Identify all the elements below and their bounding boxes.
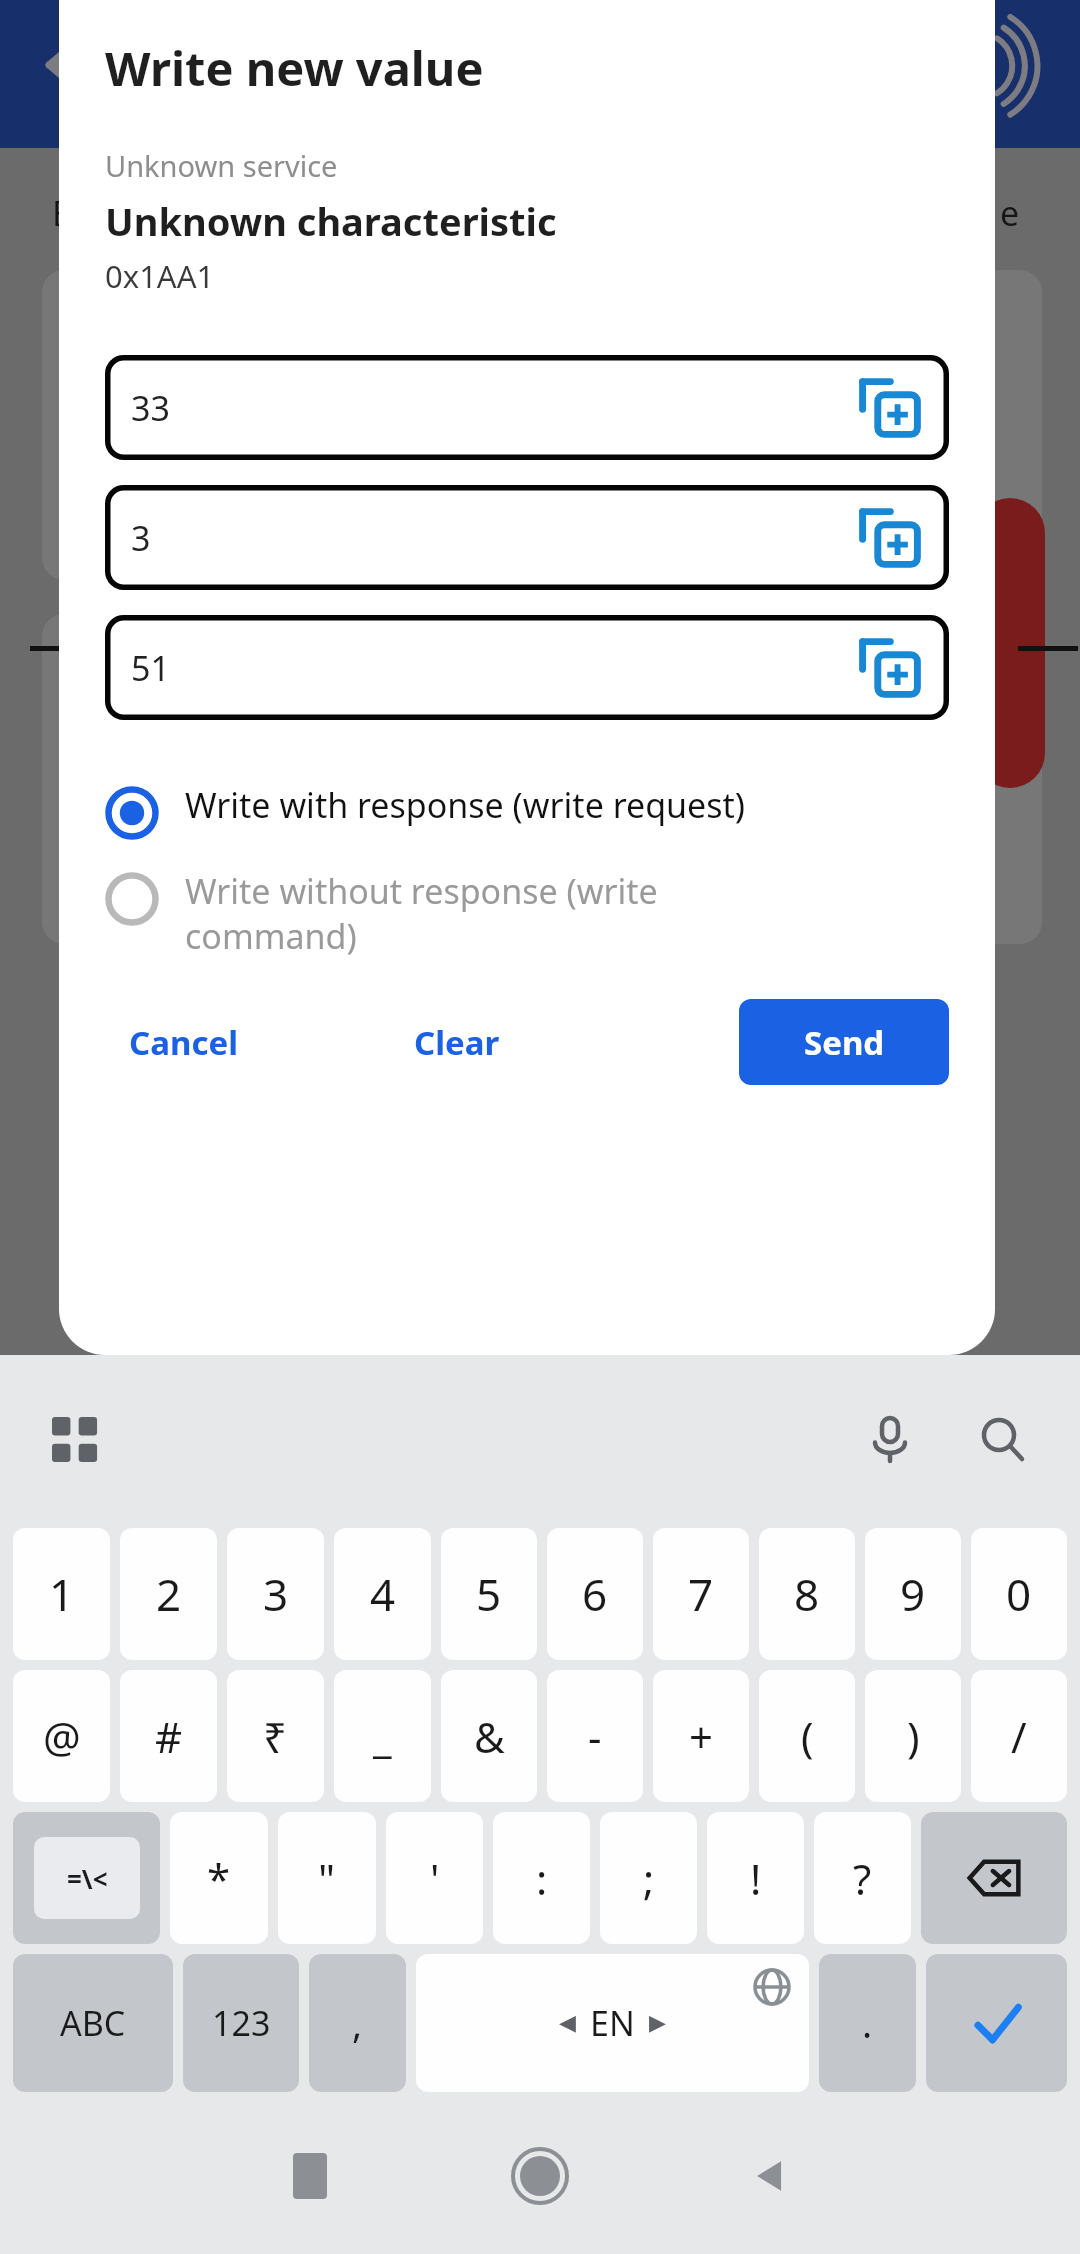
staticText: 2 <box>156 1564 182 1624</box>
staticText: Clear <box>414 1020 500 1065</box>
button[interactable]: ? <box>814 1812 911 1944</box>
staticText: 0 <box>1006 1564 1032 1624</box>
button[interactable]: 6 <box>547 1528 643 1660</box>
button[interactable]: 51 <box>105 615 949 720</box>
staticText: # <box>155 1708 183 1765</box>
button[interactable]: # <box>120 1670 217 1802</box>
button[interactable]: Search <box>960 1397 1044 1481</box>
staticText: . <box>862 1997 873 2049</box>
button[interactable]: Add value <box>853 502 925 574</box>
staticText: Cancel <box>129 1020 238 1065</box>
staticText: Unknown characteristic <box>105 195 557 247</box>
button[interactable]: 9 <box>865 1528 961 1660</box>
button[interactable]: 5 <box>441 1528 537 1660</box>
staticText: 5 <box>476 1564 502 1624</box>
staticText: 123 <box>212 2000 271 2046</box>
button[interactable]: Home <box>425 2097 655 2254</box>
button[interactable]: & <box>441 1670 537 1802</box>
button[interactable]: Recents <box>195 2097 425 2254</box>
staticText: 4 <box>370 1564 396 1624</box>
button[interactable]: 8 <box>759 1528 855 1660</box>
button[interactable]: 0 <box>971 1528 1067 1660</box>
staticText: _ <box>373 1708 392 1765</box>
button[interactable]: Write without response (write command) <box>105 868 949 959</box>
button[interactable]: =\< <box>13 1812 160 1944</box>
staticText: ? <box>853 1850 872 1907</box>
staticText: 33 <box>131 385 170 431</box>
staticText: Write without response (write command) <box>185 868 658 959</box>
staticText: / <box>1011 1708 1027 1765</box>
staticText: " <box>318 1850 336 1907</box>
staticText: BO <box>52 190 101 236</box>
staticText: - <box>588 1708 602 1765</box>
staticText: & <box>474 1708 505 1765</box>
button[interactable]: ) <box>865 1670 961 1802</box>
button[interactable]: Voice input <box>848 1397 932 1481</box>
button[interactable]: Add value <box>853 632 925 704</box>
button[interactable]: 3 <box>105 485 949 590</box>
button[interactable]: @ <box>13 1670 110 1802</box>
button[interactable]: Backspace <box>921 1812 1067 1944</box>
button[interactable]: Clear <box>390 1000 524 1085</box>
button[interactable]: Back <box>655 2097 885 2254</box>
staticText: ₹ <box>263 1708 288 1765</box>
staticText: ◀ <box>559 2010 576 2036</box>
button[interactable]: Enter <box>926 1954 1067 2092</box>
staticText: EN <box>590 2000 635 2046</box>
button[interactable]: 33 <box>105 355 949 460</box>
button[interactable]: " <box>278 1812 376 1944</box>
staticText: e <box>1000 190 1020 236</box>
button[interactable]: Add value <box>853 372 925 444</box>
staticText: 3 <box>131 515 151 561</box>
button[interactable]: 1 <box>13 1528 110 1660</box>
button[interactable]: + <box>653 1670 749 1802</box>
button[interactable]: - <box>547 1670 643 1802</box>
button[interactable]: * <box>170 1812 268 1944</box>
staticText: 3 <box>263 1564 289 1624</box>
button[interactable]: 123 <box>183 1954 299 2092</box>
button[interactable]: , <box>309 1954 406 2092</box>
button[interactable]: . <box>819 1954 916 2092</box>
staticText: @ <box>43 1708 81 1765</box>
staticText: 9 <box>900 1564 926 1624</box>
button[interactable]: Cancel <box>105 1000 262 1085</box>
button[interactable]: ◀ <box>416 1954 809 2092</box>
staticText: + <box>689 1708 714 1765</box>
button[interactable]: Keyboard modes <box>38 1403 112 1477</box>
staticText: : <box>536 1850 548 1907</box>
button[interactable]: Write with response (write request) <box>105 782 949 840</box>
button[interactable]: ! <box>707 1812 804 1944</box>
button[interactable]: 3 <box>227 1528 324 1660</box>
staticText: ; <box>643 1850 655 1907</box>
button[interactable]: 4 <box>334 1528 431 1660</box>
staticText: ' <box>430 1850 440 1907</box>
button[interactable]: : <box>493 1812 590 1944</box>
button[interactable]: ; <box>600 1812 697 1944</box>
staticText: ) <box>907 1708 920 1765</box>
button[interactable]: 7 <box>653 1528 749 1660</box>
staticText: Send <box>804 1020 885 1065</box>
staticText: ▶ <box>649 2010 666 2036</box>
staticText: 0x1AA1 <box>105 255 215 297</box>
button[interactable]: 2 <box>120 1528 217 1660</box>
button[interactable]: _ <box>334 1670 431 1802</box>
staticText: 1 <box>49 1564 75 1624</box>
staticText: 6 <box>582 1564 608 1624</box>
button[interactable]: / <box>971 1670 1067 1802</box>
staticText: ( <box>801 1708 814 1765</box>
staticText: 7 <box>688 1564 714 1624</box>
staticText: ABC <box>60 2000 126 2046</box>
staticText: Write new value <box>105 36 484 100</box>
staticText: =\< <box>67 1861 108 1896</box>
staticText: Unknown service <box>105 146 338 185</box>
staticText: * <box>207 1850 231 1907</box>
staticText: ! <box>750 1850 762 1907</box>
staticText: 8 <box>794 1564 820 1624</box>
button[interactable]: ABC <box>13 1954 173 2092</box>
staticText: Write with response (write request) <box>185 782 746 828</box>
button[interactable]: Send <box>739 999 949 1085</box>
button[interactable]: ' <box>386 1812 483 1944</box>
button[interactable]: ( <box>759 1670 855 1802</box>
staticText: 51 <box>131 645 170 691</box>
button[interactable]: ₹ <box>227 1670 324 1802</box>
